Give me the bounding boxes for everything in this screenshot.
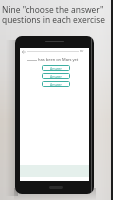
staticText: has been on Mars yet — [38, 57, 79, 62]
staticText: Nine "choose the answer" questions in ea… — [2, 4, 105, 25]
staticText: Answer — [50, 66, 62, 71]
button[interactable]: Answer — [42, 65, 70, 71]
staticText: 0/9 — [80, 49, 85, 52]
staticText: Answer — [50, 74, 62, 79]
button[interactable]: Back — [21, 49, 27, 55]
button[interactable]: Score — [80, 49, 85, 52]
button[interactable]: Answer — [42, 73, 70, 79]
staticText: Answer — [50, 82, 62, 87]
button[interactable]: Answer — [42, 81, 70, 87]
